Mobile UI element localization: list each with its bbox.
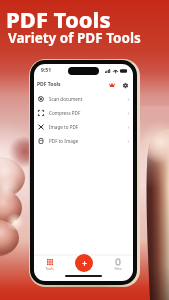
staticText: Scan document: [49, 96, 83, 102]
staticText: 9:51: [41, 67, 51, 74]
button[interactable]: Compress PDF: [34, 106, 133, 120]
button[interactable]: Settings: [120, 80, 130, 90]
staticText: Image to PDF: [49, 124, 79, 130]
button[interactable]: Scan document: [34, 92, 133, 106]
button[interactable]: Premium: [107, 80, 117, 90]
staticText: Files: [114, 266, 122, 271]
staticText: PDF Tools: [6, 4, 111, 34]
staticText: Tools: [45, 266, 54, 271]
button[interactable]: Tools: [34, 256, 65, 273]
button[interactable]: Add: [75, 254, 93, 272]
staticText: PDF Tools: [37, 81, 61, 88]
button[interactable]: Image to PDF: [34, 120, 133, 134]
button[interactable]: PDF to Image: [34, 134, 133, 148]
staticText: Variety of PDF Tools: [8, 29, 141, 47]
staticText: Compress PDF: [49, 110, 81, 116]
button[interactable]: Files: [102, 256, 133, 273]
staticText: PDF to Image: [49, 138, 79, 144]
